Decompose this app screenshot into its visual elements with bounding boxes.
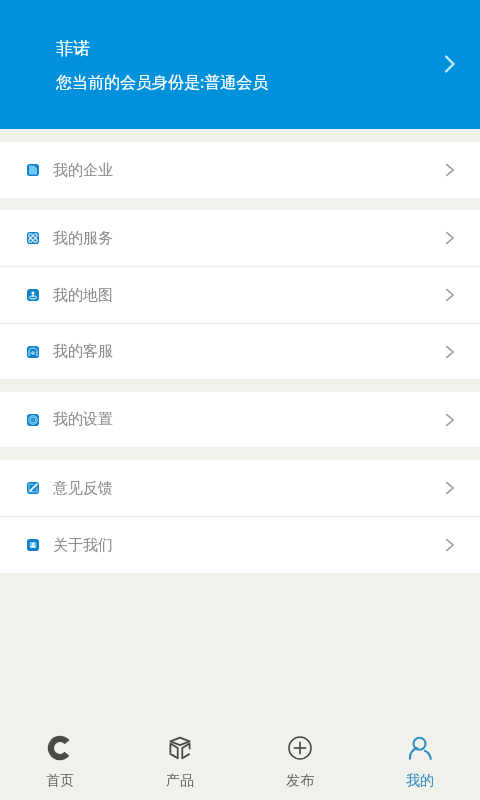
button[interactable]: 发布 (240, 716, 360, 800)
staticText: 我的地图 (53, 286, 113, 305)
button[interactable]: 我的设置 (0, 392, 480, 447)
button[interactable]: 意见反馈 (0, 460, 480, 516)
staticText: 产品 (166, 772, 194, 790)
button[interactable]: 首页 (0, 716, 120, 800)
staticText: 您当前的会员身份是:普通会员 (56, 71, 269, 93)
button[interactable]: 我的客服 (0, 324, 480, 379)
staticText: 我的企业 (53, 161, 113, 180)
staticText: 菲诺 (56, 38, 90, 59)
staticText: 关于我们 (53, 536, 113, 555)
button[interactable]: 我的企业 (0, 142, 480, 198)
staticText: 意见反馈 (53, 479, 113, 498)
staticText: 我的 (406, 772, 434, 790)
staticText: 我的设置 (53, 410, 113, 429)
staticText: 我的客服 (53, 342, 113, 361)
staticText: 我的服务 (53, 229, 113, 248)
button[interactable]: 关于我们 (0, 517, 480, 573)
button[interactable]: 我的 (360, 716, 480, 800)
button[interactable]: 我的服务 (0, 210, 480, 266)
button[interactable]: 产品 (120, 716, 240, 800)
staticText: 首页 (46, 772, 74, 790)
button[interactable]: 我的地图 (0, 267, 480, 323)
staticText: 发布 (286, 772, 314, 790)
button[interactable]: 菲诺 会员信息 (0, 0, 480, 129)
